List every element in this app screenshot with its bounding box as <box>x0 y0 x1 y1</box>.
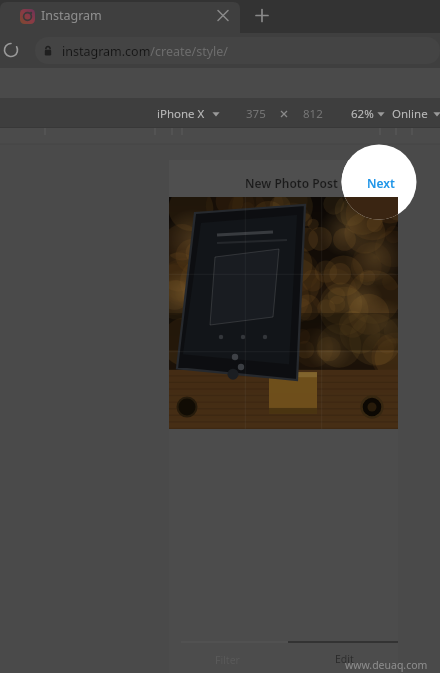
staticText: Filter <box>215 653 240 667</box>
button[interactable]: Reload <box>0 40 23 62</box>
staticText: New Photo Post <box>245 175 338 191</box>
button[interactable]: Zoom 62 percent <box>340 100 390 124</box>
button[interactable]: Close tab <box>214 6 234 26</box>
button[interactable]: Instagram tab <box>0 2 240 33</box>
button[interactable]: Throttling Online <box>388 100 440 124</box>
staticText: 812 <box>303 106 323 122</box>
staticText: Instagram <box>41 7 102 24</box>
staticText: Next <box>367 175 395 191</box>
button[interactable]: Address bar <box>35 37 440 64</box>
staticText: 375 <box>246 106 266 122</box>
staticText: 62% <box>351 106 374 122</box>
button[interactable]: Device iPhone X <box>150 100 228 124</box>
staticText: Edit <box>335 652 354 666</box>
button[interactable]: Next <box>341 160 398 197</box>
button[interactable]: New tab <box>252 5 273 26</box>
staticText: Online <box>392 106 428 122</box>
button[interactable]: Edit tab <box>284 643 398 673</box>
staticText: instagram.com/create/style/ <box>62 43 229 60</box>
staticText: iPhone X <box>157 106 205 122</box>
staticText: www.deuaq.com <box>345 658 428 672</box>
